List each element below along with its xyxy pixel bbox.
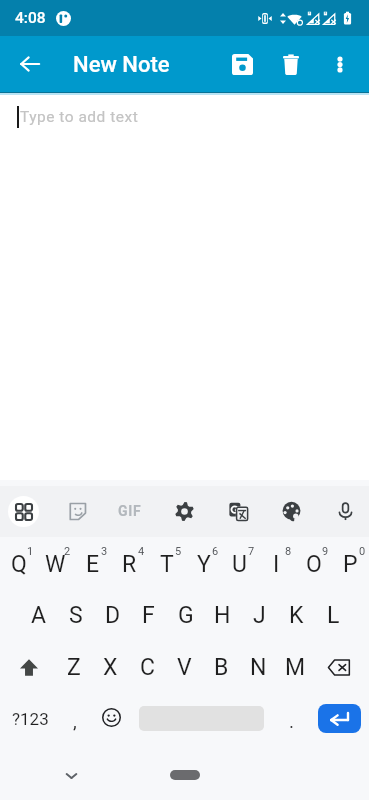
- staticText: O: [306, 551, 322, 578]
- button[interactable]: Note text field: [0, 92, 369, 480]
- staticText: R: [122, 551, 137, 578]
- button[interactable]: Backspace: [316, 644, 362, 690]
- button[interactable]: A: [20, 590, 57, 640]
- staticText: K: [289, 602, 304, 629]
- staticText: F: [142, 602, 155, 629]
- staticText: P: [343, 551, 358, 578]
- staticText: C: [140, 654, 155, 681]
- button[interactable]: Apps: [1, 489, 45, 533]
- staticText: GIF: [118, 503, 142, 519]
- button[interactable]: Delete: [268, 41, 314, 87]
- button[interactable]: ,: [57, 694, 93, 744]
- button[interactable]: Home: [170, 770, 200, 780]
- button[interactable]: .: [274, 694, 310, 744]
- staticText: 4:08: [15, 9, 46, 27]
- staticText: L: [327, 602, 340, 629]
- button[interactable]: R: [111, 539, 148, 589]
- staticText: X: [103, 654, 118, 681]
- staticText: 6: [212, 545, 219, 558]
- button[interactable]: B: [203, 642, 240, 692]
- button[interactable]: ?123: [4, 694, 56, 744]
- staticText: B: [214, 654, 229, 681]
- staticText: G: [178, 602, 194, 629]
- button[interactable]: H: [204, 590, 241, 640]
- button[interactable]: P: [332, 539, 369, 589]
- staticText: J: [253, 602, 266, 629]
- button[interactable]: U: [221, 539, 258, 589]
- button[interactable]: V: [166, 642, 203, 692]
- button[interactable]: Hide keyboard: [51, 756, 91, 796]
- staticText: I: [273, 551, 280, 578]
- staticText: ,: [73, 710, 77, 732]
- staticText: 4: [138, 545, 145, 558]
- button[interactable]: Z: [55, 642, 92, 692]
- staticText: 8: [285, 545, 292, 558]
- staticText: Type to add text: [20, 108, 139, 126]
- button[interactable]: L: [315, 590, 352, 640]
- button[interactable]: Settings: [162, 489, 206, 533]
- staticText: 7: [248, 545, 255, 558]
- staticText: 3: [101, 545, 108, 558]
- staticText: N: [250, 654, 267, 681]
- button[interactable]: Emoji: [93, 699, 129, 735]
- button[interactable]: D: [94, 590, 131, 640]
- button[interactable]: Voice input: [323, 489, 367, 533]
- staticText: T: [160, 551, 174, 578]
- button[interactable]: Back: [10, 44, 50, 84]
- button[interactable]: O: [295, 539, 332, 589]
- button[interactable]: Themes: [269, 489, 313, 533]
- button[interactable]: Enter: [318, 704, 361, 733]
- button[interactable]: Shift: [6, 644, 52, 690]
- staticText: E: [86, 551, 100, 578]
- button[interactable]: More options: [317, 41, 363, 87]
- button[interactable]: N: [240, 642, 277, 692]
- button[interactable]: T: [148, 539, 185, 589]
- button[interactable]: GIF: [108, 489, 152, 533]
- button[interactable]: W: [37, 539, 74, 589]
- staticText: .: [289, 710, 295, 732]
- staticText: Y: [197, 551, 211, 578]
- staticText: 1: [27, 545, 34, 558]
- button[interactable]: G: [167, 590, 204, 640]
- staticText: ?123: [12, 709, 49, 729]
- button[interactable]: J: [241, 590, 278, 640]
- button[interactable]: K: [278, 590, 315, 640]
- staticText: U: [232, 551, 247, 578]
- button[interactable]: C: [129, 642, 166, 692]
- button[interactable]: Stickers: [55, 489, 99, 533]
- staticText: 0: [359, 545, 366, 558]
- button[interactable]: Q: [0, 539, 37, 589]
- button[interactable]: S: [57, 590, 94, 640]
- staticText: New Note: [73, 52, 170, 78]
- staticText: M: [285, 654, 306, 681]
- staticText: 9: [322, 545, 329, 558]
- button[interactable]: E: [74, 539, 111, 589]
- button[interactable]: X: [92, 642, 129, 692]
- staticText: Q: [11, 551, 27, 578]
- staticText: 2: [64, 545, 71, 558]
- staticText: D: [105, 602, 121, 629]
- staticText: Z: [67, 654, 81, 681]
- staticText: H: [214, 602, 231, 629]
- button[interactable]: F: [130, 590, 167, 640]
- button[interactable]: I: [258, 539, 295, 589]
- staticText: 5: [175, 545, 182, 558]
- button[interactable]: Translate: [216, 489, 260, 533]
- button[interactable]: Save: [219, 41, 265, 87]
- staticText: V: [177, 654, 192, 681]
- staticText: A: [31, 602, 47, 629]
- button[interactable]: Y: [185, 539, 222, 589]
- staticText: S: [69, 602, 83, 629]
- button[interactable]: M: [277, 642, 314, 692]
- staticText: W: [45, 551, 66, 578]
